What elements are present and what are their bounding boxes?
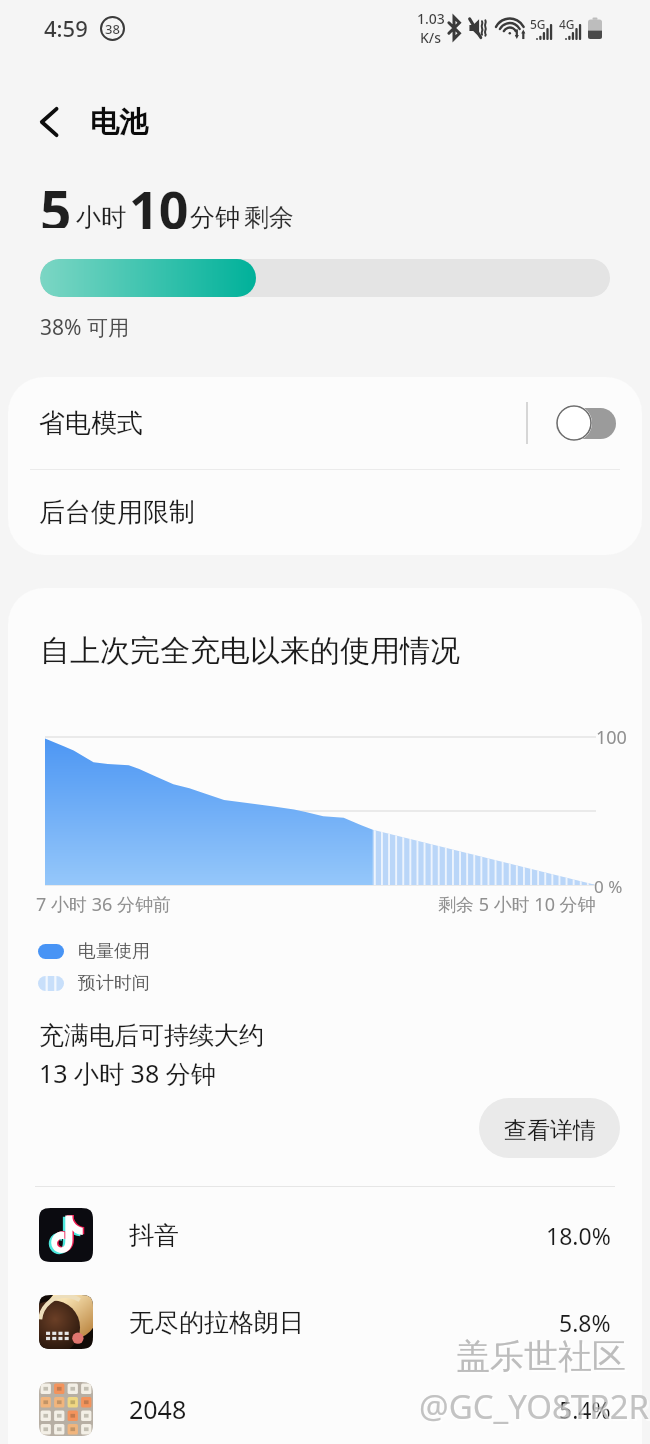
staticText: 13 小时 38 分钟 bbox=[39, 1056, 216, 1090]
staticText: 4G bbox=[559, 16, 575, 32]
staticText: 盖乐世社区 bbox=[458, 1337, 628, 1380]
button[interactable]: Power saving mode toggle bbox=[556, 405, 616, 441]
staticText: 剩余 bbox=[244, 202, 294, 233]
staticText: @GC_YO8TR2R bbox=[421, 1386, 650, 1431]
staticText: 盖乐世社区 bbox=[456, 1335, 626, 1378]
staticText: 5G bbox=[530, 16, 546, 32]
staticText: 省电模式 bbox=[39, 407, 143, 440]
staticText: 无尽的拉格朗日 bbox=[129, 1307, 304, 1338]
staticText: 自上次完全充电以来的使用情况 bbox=[40, 632, 460, 670]
staticText: 5.4% bbox=[559, 1394, 611, 1425]
staticText: 4:59 bbox=[44, 13, 88, 43]
button[interactable]: 无尽的拉格朗日 bbox=[8, 1279, 642, 1365]
staticText: 18.0% bbox=[546, 1220, 611, 1251]
button[interactable]: 抖音 bbox=[8, 1192, 642, 1278]
staticText: 7 小时 36 分钟前 bbox=[36, 892, 171, 917]
staticText: 38 bbox=[105, 20, 120, 38]
button[interactable]: 查看详情 bbox=[479, 1098, 620, 1158]
staticText: 电量使用 bbox=[78, 940, 150, 963]
staticText: 100 bbox=[596, 725, 627, 750]
staticText: 2048 bbox=[129, 1392, 187, 1426]
staticText: 5 bbox=[40, 172, 72, 228]
staticText: 电池 bbox=[90, 104, 148, 141]
button[interactable]: 2048 bbox=[8, 1366, 642, 1444]
staticText: 预计时间 bbox=[78, 972, 150, 995]
button[interactable]: Back bbox=[26, 99, 72, 145]
staticText: 后台使用限制 bbox=[39, 496, 195, 529]
staticText: @GC_YO8TR2R bbox=[419, 1384, 650, 1429]
button[interactable]: 后台使用限制 bbox=[8, 470, 642, 555]
staticText: 剩余 5 小时 10 分钟 bbox=[438, 892, 596, 917]
staticText: 1.03 bbox=[417, 9, 445, 28]
staticText: 38% 可用 bbox=[40, 313, 129, 342]
staticText: 查看详情 bbox=[504, 1116, 596, 1145]
staticText: 10 bbox=[129, 173, 189, 229]
staticText: 充满电后可持续大约 bbox=[39, 1020, 264, 1051]
staticText: 0 % bbox=[594, 875, 623, 898]
staticText: K/s bbox=[420, 28, 442, 47]
button[interactable]: 省电模式 bbox=[8, 377, 642, 469]
staticText: 分钟 bbox=[190, 202, 240, 233]
staticText: 抖音 bbox=[129, 1220, 179, 1251]
staticText: 5.8% bbox=[559, 1307, 611, 1338]
staticText: 小时 bbox=[76, 202, 126, 233]
